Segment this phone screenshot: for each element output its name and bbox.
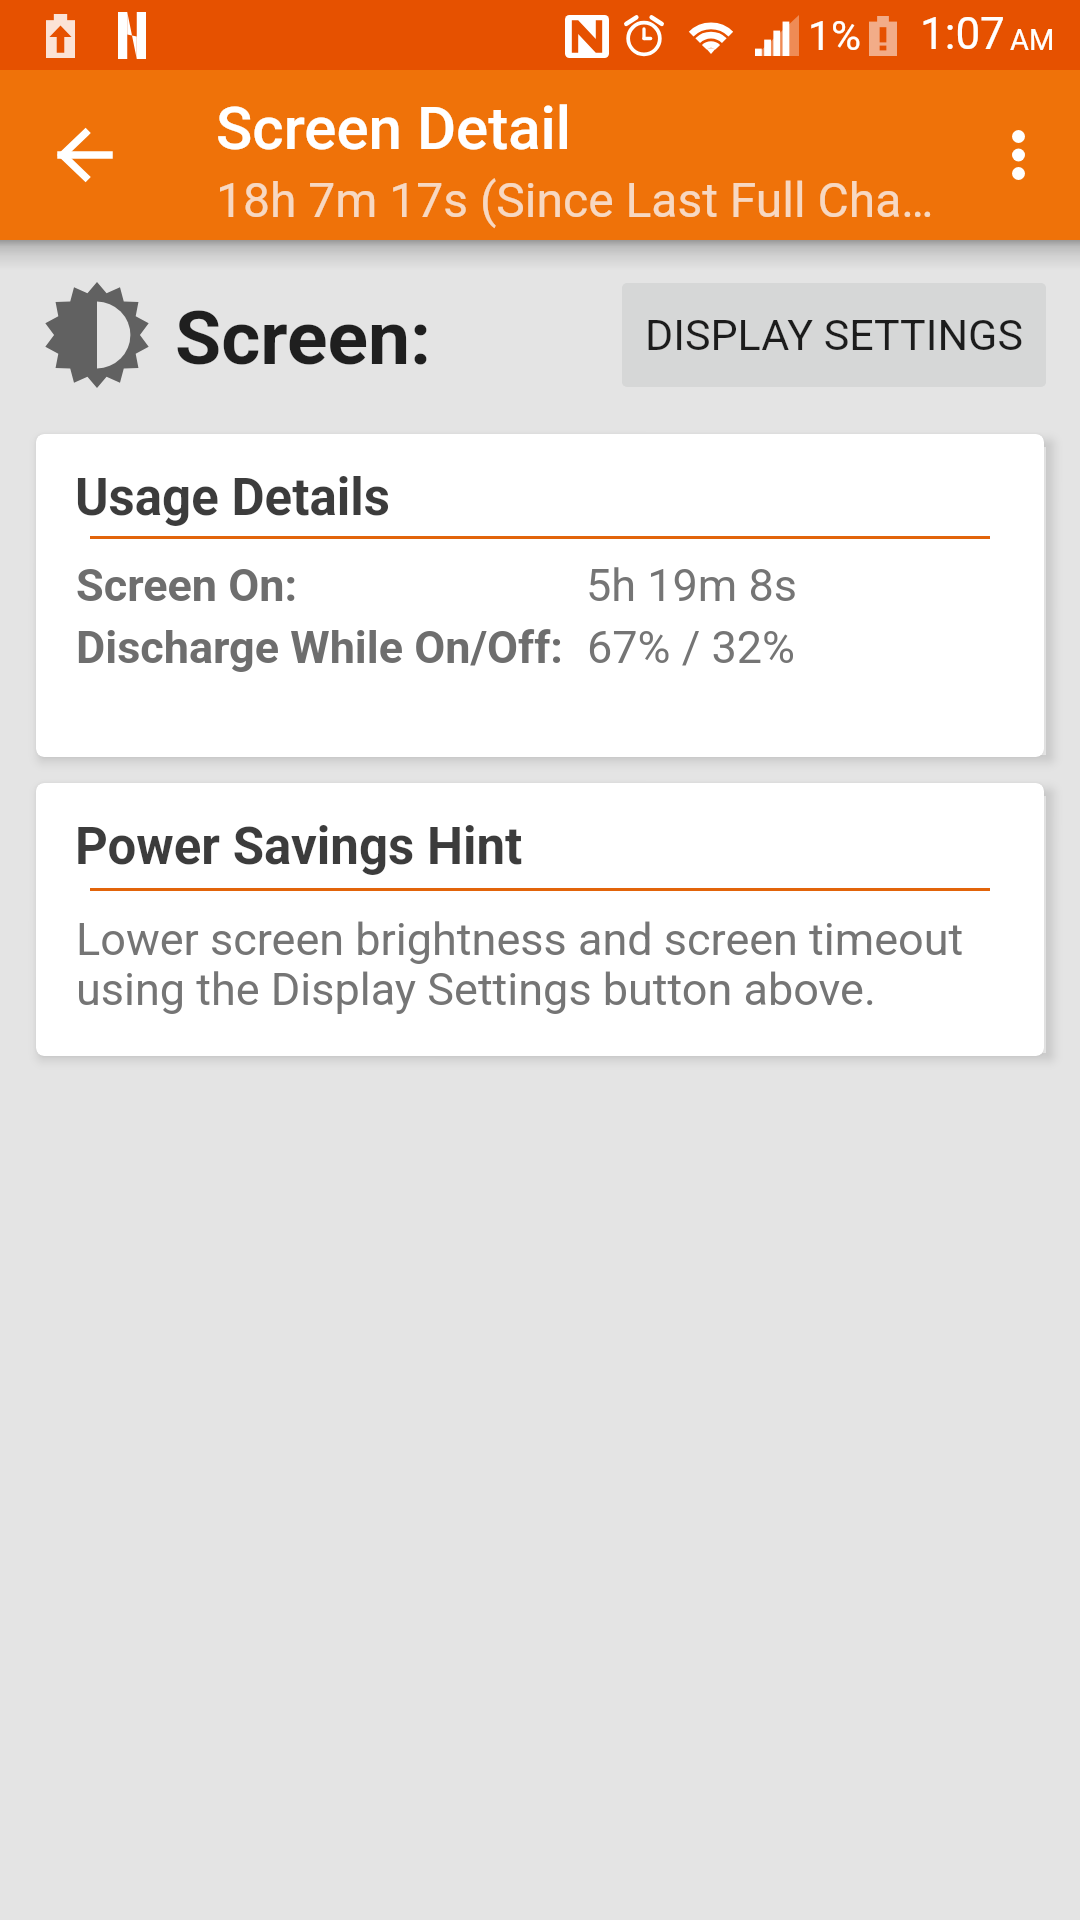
staticText: 18h 7m 17s (Since Last Full Cha… [216,172,934,228]
button[interactable]: More options [968,105,1068,205]
button[interactable]: DISPLAY SETTINGS [622,283,1046,387]
staticText: DISPLAY SETTINGS [645,310,1023,360]
staticText: Screen Detail [216,93,572,163]
staticText: Screen: [175,294,432,382]
staticText: Usage Details [75,468,390,528]
staticText: 5h 19m 8s [586,559,797,612]
staticText: Power Savings Hint [75,817,523,877]
staticText: 1% [808,12,862,60]
staticText: Discharge While On/Off: [76,621,564,674]
staticText: 67% / 32% [587,621,795,674]
button[interactable]: Navigate up [28,99,140,211]
staticText: Lower screen brightness and screen timeo… [76,913,1004,1016]
staticText: AM [1010,23,1055,57]
staticText: Screen On: [76,559,298,612]
staticText: 1:07 [920,8,1005,60]
